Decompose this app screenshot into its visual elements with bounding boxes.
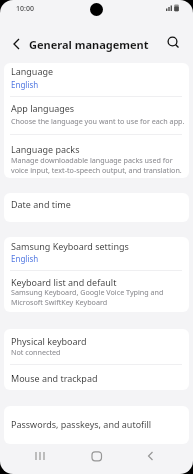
button[interactable]: [140, 446, 162, 466]
button[interactable]: [4, 193, 189, 222]
button[interactable]: [4, 364, 189, 390]
button[interactable]: [4, 329, 189, 364]
staticText: Language packs: [11, 143, 80, 155]
staticText: General management: [29, 37, 149, 52]
staticText: Mouse and trackpad: [11, 372, 98, 384]
staticText: Passwords, passkeys, and autofill: [11, 418, 152, 430]
button[interactable]: [163, 32, 183, 52]
staticText: Date and time: [11, 198, 71, 210]
button[interactable]: [30, 446, 52, 466]
button[interactable]: [4, 134, 189, 178]
staticText: Language: [11, 65, 54, 77]
staticText: Physical keyboard: [11, 335, 87, 347]
staticText: App languages: [11, 102, 75, 114]
staticText: Samsung Keyboard settings: [11, 240, 129, 252]
staticText: voice input, text-to-speech output, and …: [11, 165, 182, 175]
button[interactable]: [86, 446, 108, 466]
staticText: English: [11, 253, 39, 264]
staticText: Microsoft SwiftKey Keyboard: [11, 297, 108, 307]
staticText: Samsung Keyboard, Google Voice Typing an…: [11, 287, 164, 297]
staticText: Not connected: [11, 347, 61, 357]
staticText: 10:00: [16, 4, 34, 14]
button[interactable]: [4, 237, 189, 270]
staticText: Choose the language you want to use for …: [11, 116, 185, 126]
staticText: Keyboard list and default: [11, 276, 117, 288]
button[interactable]: [4, 63, 189, 96]
button[interactable]: [4, 271, 189, 312]
staticText: Manage downloadable language packs used …: [11, 155, 173, 165]
button[interactable]: [4, 406, 189, 444]
staticText: English: [11, 79, 39, 90]
button[interactable]: [6, 34, 26, 54]
button[interactable]: [4, 96, 189, 134]
